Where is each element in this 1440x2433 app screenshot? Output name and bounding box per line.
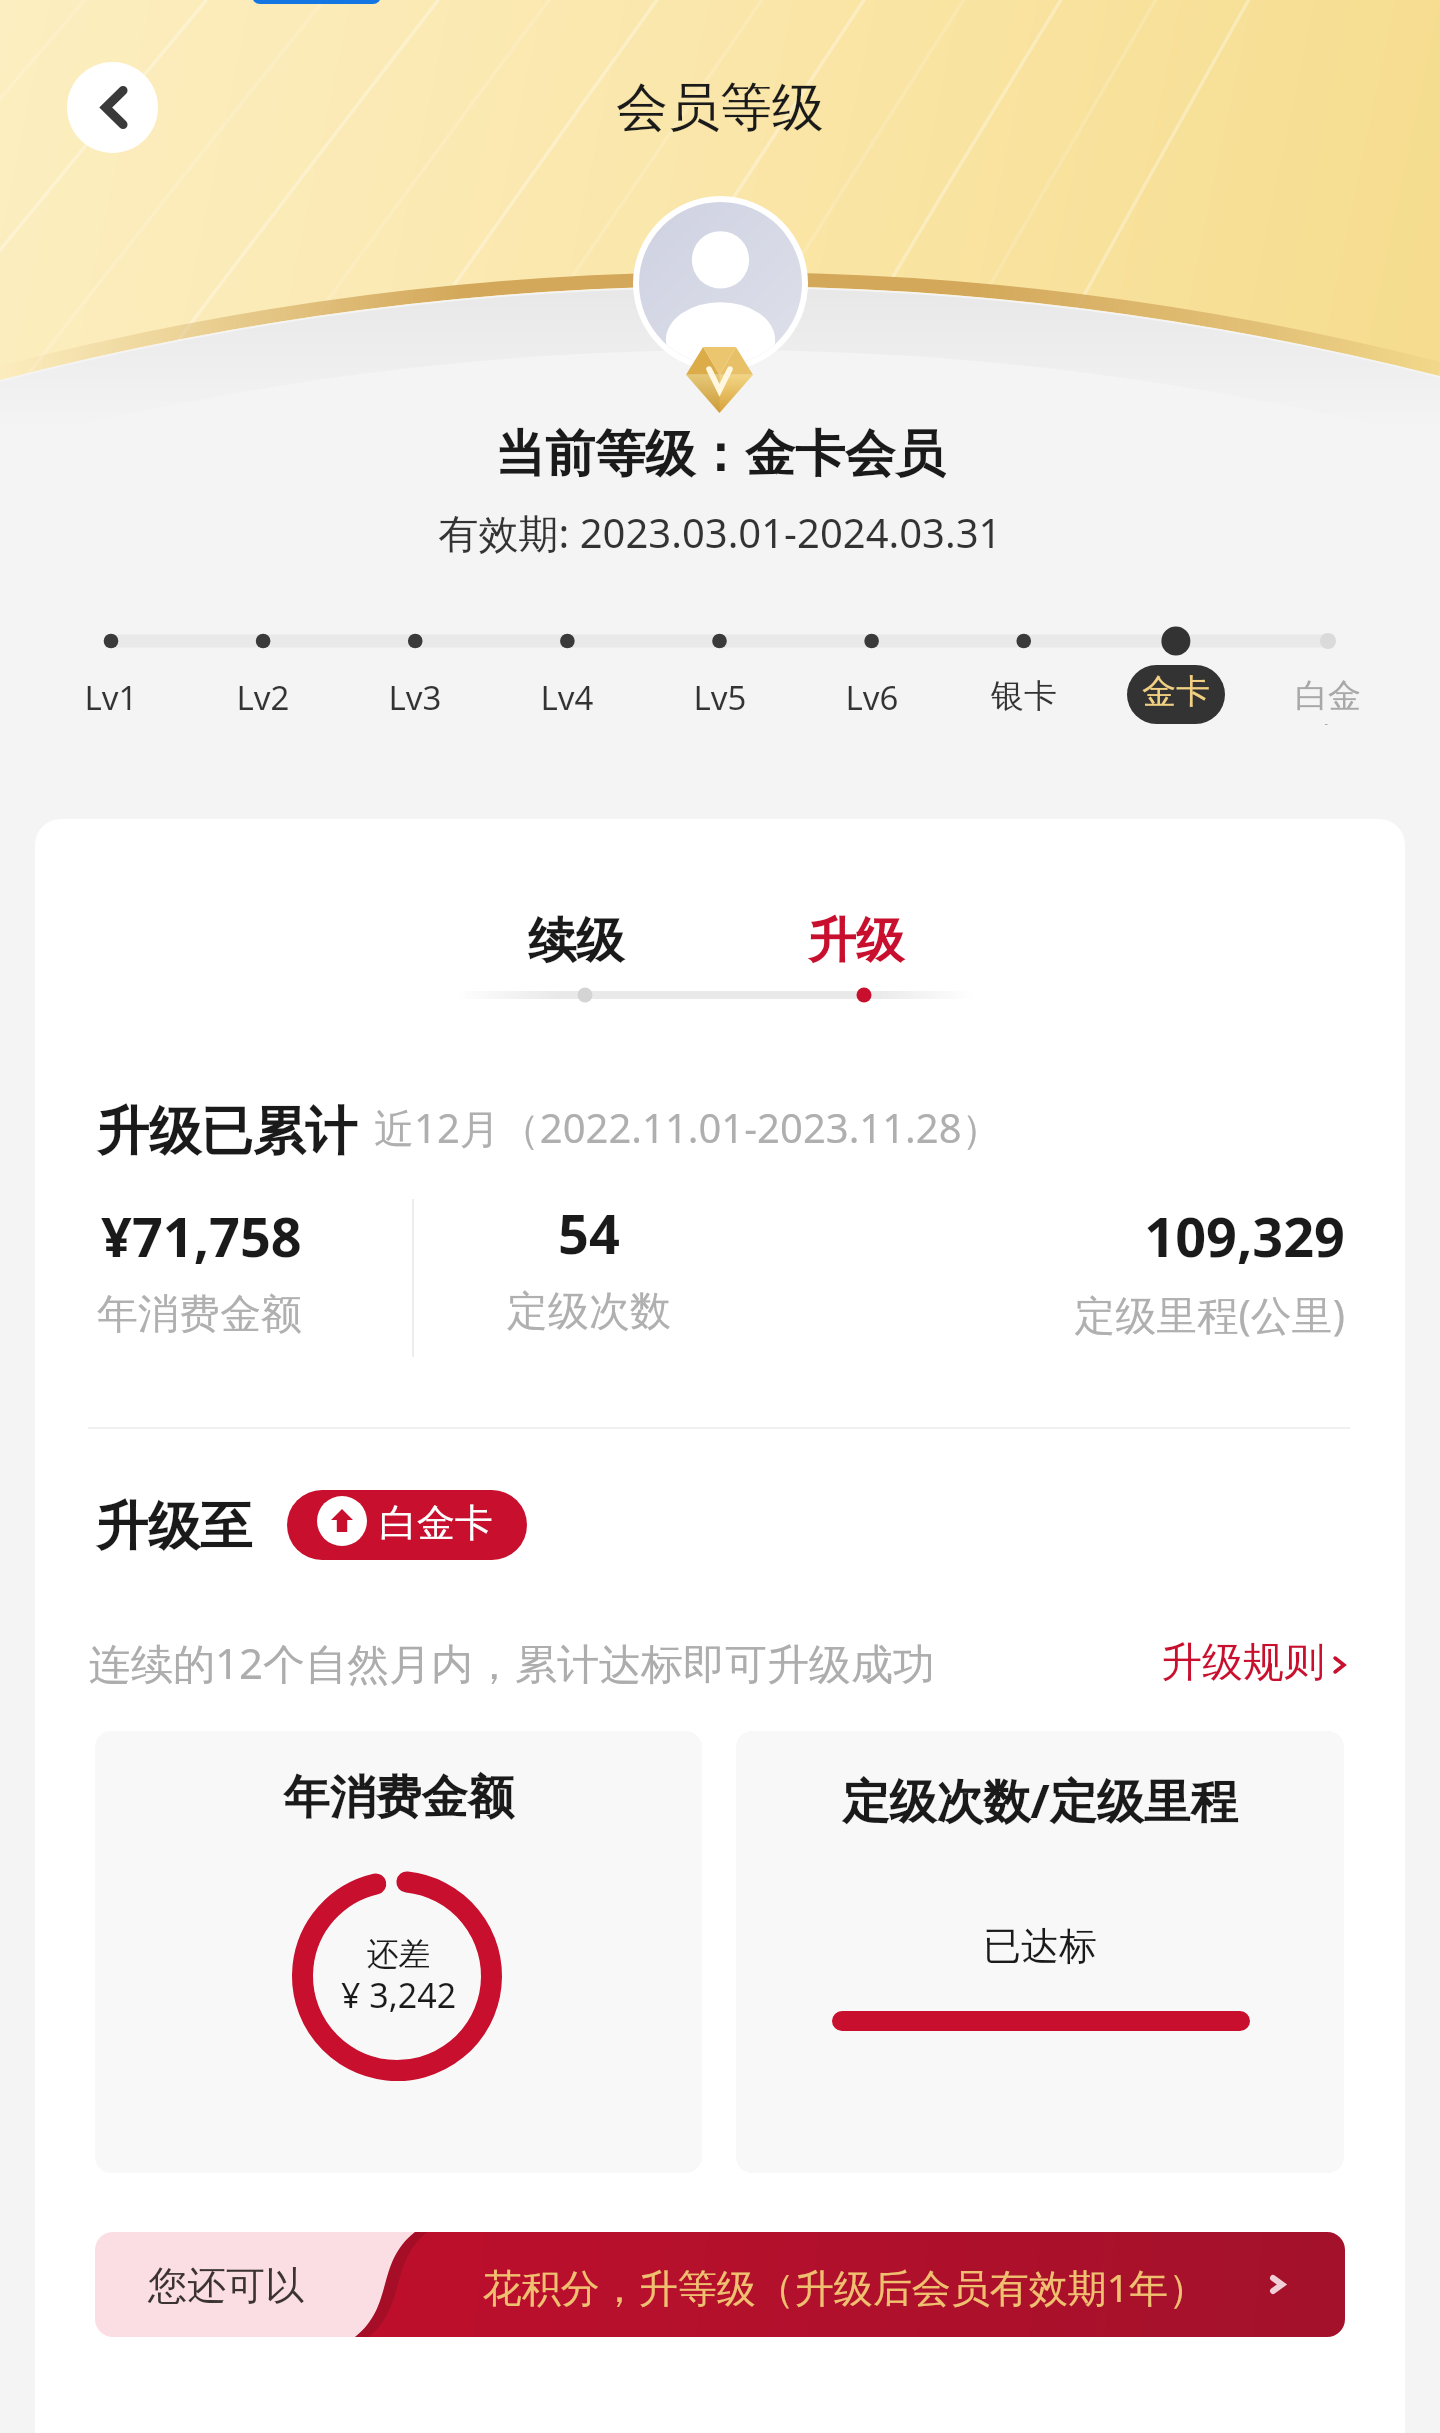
staticText: 还差 xyxy=(95,1934,702,1974)
button[interactable]: 您还可以 xyxy=(95,2232,1345,2337)
staticText: Lv1 xyxy=(62,675,160,720)
button[interactable]: Lv3 xyxy=(366,670,464,720)
button[interactable]: Lv5 xyxy=(671,670,769,720)
staticText: ¥71,758 xyxy=(101,1199,302,1273)
button[interactable]: Back xyxy=(67,62,158,153)
staticText: 连续的12个自然月内，累计达标即可升级成功 xyxy=(89,1634,936,1691)
staticText: 54 xyxy=(389,1196,789,1270)
staticText: 已达标 xyxy=(736,1922,1344,1970)
staticText: 有效期: 2023.03.01-2024.03.31 xyxy=(0,505,1440,560)
button[interactable]: 白金卡 xyxy=(287,1490,527,1560)
button[interactable]: 升级规则 xyxy=(1160,1628,1355,1696)
staticText: 定级里程(公里) xyxy=(945,1286,1345,1342)
staticText: 当前等级：金卡会员 xyxy=(0,423,1440,486)
staticText: ¥ 3,242 xyxy=(95,1972,702,2018)
button[interactable]: Lv4 xyxy=(518,670,616,720)
button[interactable]: Lv2 xyxy=(214,670,312,720)
staticText: Lv5 xyxy=(671,675,769,720)
staticText: 109,329 xyxy=(945,1199,1345,1273)
button[interactable]: 续级 xyxy=(526,908,626,968)
staticText: 会员等级 xyxy=(0,75,1440,141)
staticText: 升级至 xyxy=(96,1494,252,1560)
staticText: 银卡 xyxy=(975,675,1073,717)
staticText: 白金卡 xyxy=(1279,675,1377,725)
staticText: Lv6 xyxy=(823,675,921,720)
staticText: 升级 xyxy=(806,911,906,971)
staticText: 升级已累计 xyxy=(97,1099,357,1165)
button[interactable]: 年消费金额 xyxy=(95,1731,702,2173)
staticText: 金卡 xyxy=(1127,670,1225,713)
staticText: 白金卡 xyxy=(336,1499,527,1547)
staticText: Lv3 xyxy=(366,675,464,720)
button[interactable]: 金卡 xyxy=(1127,665,1225,724)
staticText: 定级次数 xyxy=(389,1286,789,1338)
button[interactable]: Lv6 xyxy=(823,670,921,720)
button[interactable]: 定级次数/定级里程 xyxy=(736,1731,1344,2173)
staticText: 年消费金额 xyxy=(97,1289,302,1341)
staticText: Lv2 xyxy=(214,675,312,720)
staticText: 年消费金额 xyxy=(95,1769,702,1827)
button[interactable]: Lv1 xyxy=(62,670,160,720)
staticText: 您还可以 xyxy=(95,2261,376,2310)
staticText: 定级次数/定级里程 xyxy=(736,1768,1344,1832)
button[interactable]: 银卡 xyxy=(975,670,1073,720)
button[interactable]: 升级 xyxy=(806,908,906,968)
staticText: Lv4 xyxy=(518,675,616,720)
staticText: 近12月（2022.11.01-2023.11.28） xyxy=(374,1100,1002,1155)
staticText: 升级规则 xyxy=(1161,1637,1325,1689)
staticText: 续级 xyxy=(526,911,626,971)
staticText: 花积分，升等级（升级后会员有效期1年） xyxy=(395,2260,1295,2313)
button[interactable]: 白金卡 xyxy=(1279,670,1377,720)
